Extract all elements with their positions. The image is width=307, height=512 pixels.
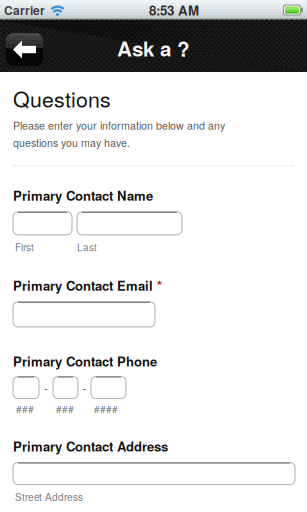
button[interactable]: Text field (13, 212, 72, 235)
staticText: Primary Contact Phone (13, 352, 157, 370)
staticText: Primary Contact Email (13, 276, 153, 295)
staticText: Questions (13, 83, 111, 113)
button[interactable]: Text field (13, 302, 155, 327)
staticText: * (157, 276, 162, 295)
staticText: Carrier (4, 1, 45, 19)
staticText: - (44, 380, 48, 395)
button[interactable]: Text field (53, 377, 78, 399)
button[interactable]: Text field (13, 377, 39, 399)
staticText: Last (77, 240, 97, 254)
staticText: ### (16, 402, 34, 416)
button[interactable]: Text field (77, 212, 182, 235)
button[interactable]: Text field (13, 463, 295, 485)
staticText: Primary Contact Name (13, 186, 153, 205)
staticText: Primary Contact Address (13, 437, 168, 456)
button[interactable]: Back (6, 33, 43, 66)
staticText: Please enter your information below and … (13, 117, 225, 133)
staticText: #### (94, 402, 118, 416)
staticText: 8:53 AM (149, 0, 199, 20)
staticText: ### (56, 402, 74, 416)
staticText: Street Address (15, 490, 83, 504)
staticText: First (15, 240, 34, 254)
staticText: questions you may have. (13, 135, 130, 150)
staticText: Ask a ? (117, 33, 190, 63)
button[interactable]: Text field (91, 377, 126, 399)
staticText: - (82, 380, 86, 395)
